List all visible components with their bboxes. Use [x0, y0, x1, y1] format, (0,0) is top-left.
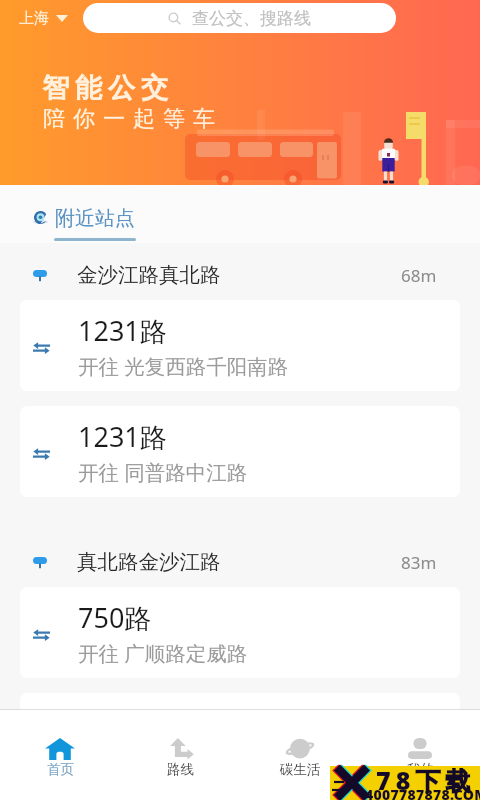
staticText: 上海	[19, 9, 49, 28]
button[interactable]: 附近站点	[34, 185, 136, 241]
button[interactable]: 碳生活	[240, 710, 360, 778]
staticText: 68m	[401, 264, 437, 287]
staticText: 1231路	[78, 418, 167, 455]
button[interactable]: 路线	[120, 710, 240, 778]
staticText: 我的	[407, 761, 434, 778]
staticText: 碳生活	[280, 761, 321, 778]
staticText: 750路	[78, 599, 152, 636]
staticText: 首页	[47, 761, 74, 778]
staticText: 4007787878.COM	[365, 785, 480, 800]
button[interactable]: 750路	[20, 587, 460, 678]
button[interactable]: 首页	[0, 710, 120, 778]
staticText: 智能公交	[39, 71, 171, 105]
staticText: 陪你一起等车	[39, 105, 219, 133]
button[interactable]: 1231路	[20, 406, 460, 497]
staticText: 金沙江路真北路	[77, 262, 221, 288]
button[interactable]: 上海	[19, 9, 68, 28]
staticText: 路线	[167, 761, 194, 778]
staticText: 78下载	[376, 763, 476, 797]
button[interactable]: 1231路	[20, 300, 460, 391]
button[interactable]: 我的	[360, 710, 480, 778]
staticText: 开往 同普路中江路	[78, 458, 248, 486]
staticText: 开往 光复西路千阳南路	[78, 352, 289, 380]
staticText: 1231路	[78, 312, 167, 349]
staticText: 查公交、搜路线	[192, 8, 311, 29]
button[interactable]: 查公交、搜路线	[83, 3, 396, 33]
button[interactable]: 金沙江路真北路	[0, 250, 480, 300]
staticText: 开往 广顺路定威路	[78, 639, 248, 667]
staticText: 83m	[401, 551, 437, 574]
button[interactable]	[20, 693, 460, 784]
staticText: 附近站点	[55, 206, 135, 231]
button[interactable]: 真北路金沙江路	[0, 537, 480, 587]
staticText: 真北路金沙江路	[77, 549, 221, 575]
